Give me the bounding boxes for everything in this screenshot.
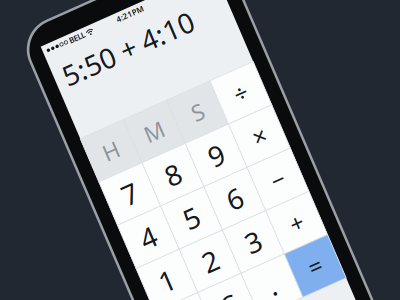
staticText: 5:50 + 4:10 xyxy=(35,76,177,113)
button[interactable]: 6 xyxy=(121,253,169,300)
button[interactable]: 5 xyxy=(74,253,121,300)
staticText: × xyxy=(186,213,200,245)
button[interactable]: M xyxy=(74,158,121,205)
staticText: S xyxy=(139,167,151,197)
button[interactable]: − xyxy=(169,253,216,300)
staticText: 6 xyxy=(137,258,153,295)
staticText: BELL xyxy=(53,58,72,69)
staticText: M xyxy=(87,167,108,197)
button[interactable]: 8 xyxy=(74,205,121,253)
button[interactable]: S xyxy=(121,158,169,205)
staticText: 9 xyxy=(137,211,153,248)
button[interactable]: 9 xyxy=(121,205,169,253)
button[interactable]: ÷ xyxy=(169,158,216,205)
button[interactable]: H xyxy=(26,158,74,205)
staticText: 4:21PM xyxy=(107,58,136,69)
button[interactable]: × xyxy=(169,205,216,253)
staticText: − xyxy=(186,261,200,293)
staticText: ÷ xyxy=(186,166,200,198)
staticText: 8 xyxy=(90,211,106,248)
